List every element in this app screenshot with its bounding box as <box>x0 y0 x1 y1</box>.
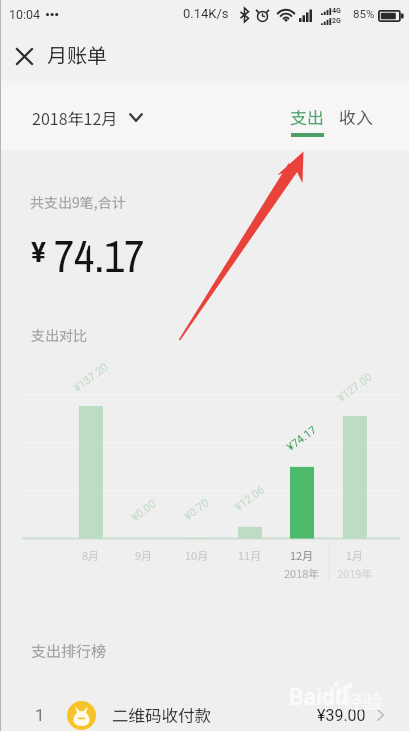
staticText: 经验 <box>344 687 383 715</box>
staticText: 二维码收付款 <box>112 703 211 727</box>
staticText: ¥12.06 <box>232 483 267 514</box>
button[interactable]: 2018年12月 <box>24 100 151 135</box>
staticText: ¥137.20 <box>71 360 111 395</box>
staticText: 支出排行榜 <box>31 640 107 662</box>
staticText: ¥127.00 <box>335 370 375 405</box>
staticText: 2018年 <box>284 565 320 581</box>
button[interactable]: 支出 <box>286 104 328 137</box>
staticText: 2018年12月 <box>32 106 118 129</box>
staticText: 10:04 <box>9 7 41 22</box>
staticText: 9月 <box>135 547 153 563</box>
staticText: ¥0.70 <box>182 496 212 523</box>
staticText: 共支出9笔,合计 <box>30 192 126 212</box>
staticText: ¥ <box>31 236 47 269</box>
staticText: 10月 <box>185 547 209 563</box>
staticText: 4G <box>332 7 341 15</box>
staticText: 8月 <box>82 547 100 563</box>
staticText: 1月 <box>346 547 364 563</box>
staticText: 月账单 <box>47 40 107 69</box>
staticText: 收入 <box>339 104 373 129</box>
staticText: 12月 <box>290 547 314 563</box>
button[interactable]: Close <box>9 41 40 72</box>
staticText: 支出 <box>290 104 324 129</box>
staticText: ¥74.17 <box>284 423 319 454</box>
staticText: 支出对比 <box>31 325 87 345</box>
staticText: 11月 <box>238 547 262 563</box>
staticText: Baidu <box>289 684 348 711</box>
staticText: 0.14K/s <box>183 6 229 21</box>
staticText: 1 <box>35 705 45 725</box>
staticText: 2019年 <box>337 565 373 581</box>
button[interactable]: 1 <box>0 692 409 731</box>
staticText: 74.17 <box>54 226 145 285</box>
staticText: 85% <box>353 7 375 20</box>
staticText: ¥0.00 <box>129 497 159 524</box>
button[interactable]: 收入 <box>335 104 377 129</box>
staticText: 2G <box>332 17 341 25</box>
staticText: ¥39.00 <box>317 706 366 725</box>
